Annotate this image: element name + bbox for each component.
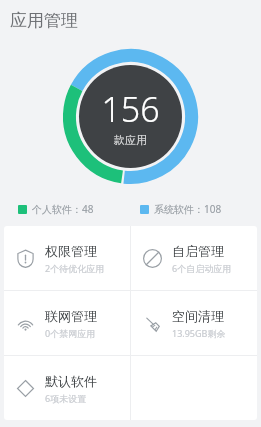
other: Network management [16, 314, 35, 333]
staticText: 款应用 [114, 133, 147, 147]
staticText: 6个自启动应用 [172, 262, 232, 274]
staticText: 联网管理 [45, 308, 97, 324]
other: Default apps [16, 379, 35, 398]
button[interactable]: Space cleanup [131, 291, 257, 355]
staticText: 空间清理 [172, 308, 224, 324]
staticText: 应用管理 [10, 10, 78, 31]
button[interactable]: Autostart management [131, 226, 257, 290]
staticText: 默认软件 [45, 373, 97, 389]
staticText: 个人软件：48 [32, 202, 94, 216]
other: Permission management [16, 249, 35, 268]
staticText: 156 [101, 86, 160, 132]
staticText: 13.95GB剩余 [172, 327, 226, 339]
button[interactable]: Default apps [4, 356, 130, 420]
other: Autostart management [143, 249, 162, 268]
staticText: 2个待优化应用 [45, 262, 105, 274]
staticText: 系统软件：108 [154, 202, 222, 216]
button[interactable]: Network management [4, 291, 130, 355]
staticText: 0个禁网应用 [45, 327, 96, 339]
staticText: 6项未设置 [45, 392, 87, 404]
staticText: 自启管理 [172, 243, 224, 259]
staticText: 权限管理 [45, 243, 97, 259]
button[interactable]: Permission management [4, 226, 130, 290]
other: Space cleanup [143, 314, 162, 333]
